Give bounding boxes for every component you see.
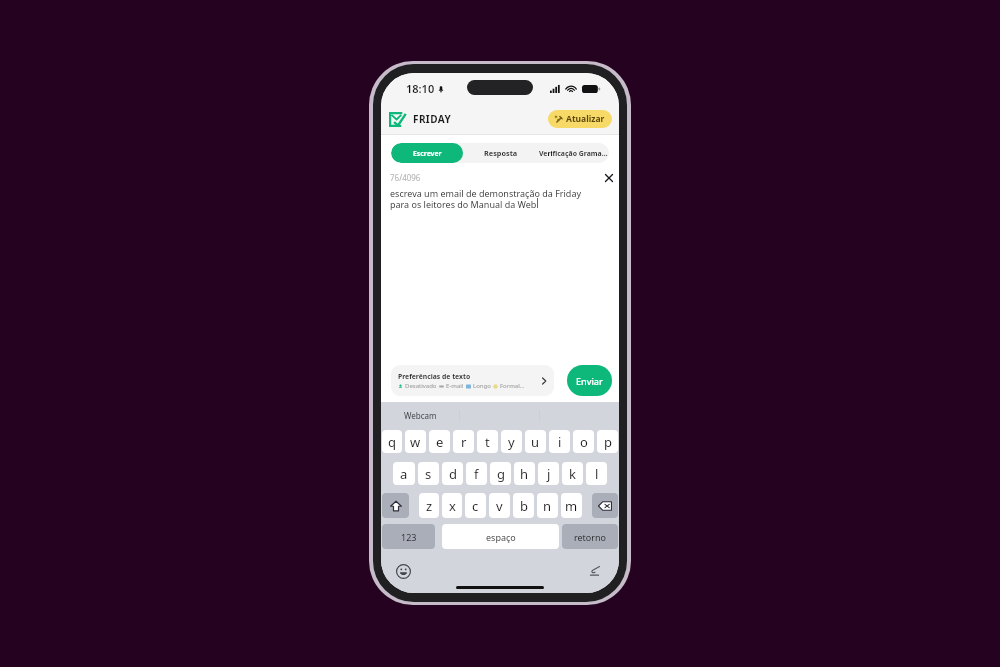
button[interactable]: Emoji [395,563,411,579]
staticText: FRIDAY [413,112,452,126]
staticText: w [410,433,421,451]
button[interactable]: Enviar [567,365,612,396]
staticText: Atualizar [566,113,605,125]
button[interactable]: m [561,493,582,518]
button[interactable]: x [442,493,462,518]
button[interactable]: n [537,493,558,518]
staticText: v [496,497,503,515]
button[interactable]: r [453,430,474,453]
staticText: espaço [486,531,516,543]
button[interactable]: Apagar [592,493,618,518]
button[interactable]: f [466,462,487,485]
button[interactable]: g [490,462,511,485]
staticText: f [474,465,479,483]
staticText: o [580,433,588,451]
button[interactable]: Escrever [391,143,463,163]
staticText: b [520,497,528,515]
staticText: d [449,465,457,483]
staticText: escreva um email de demonstração da Frid… [390,187,593,210]
button[interactable]: Verificação Grama… [538,143,609,163]
button[interactable]: z [419,493,439,518]
button[interactable]: p [597,430,618,453]
button[interactable]: l [586,462,607,485]
staticText: c [472,497,479,515]
staticText: h [520,465,529,483]
button[interactable]: v [489,493,510,518]
button[interactable]: Ocultar teclado [589,565,601,577]
button[interactable]: k [562,462,583,485]
staticText: Verificação Grama… [539,149,608,158]
staticText: g [497,465,505,483]
button[interactable]: d [442,462,463,485]
staticText: i [558,433,562,451]
staticText: t [485,433,490,451]
staticText: x [449,497,456,515]
staticText: Enviar [576,375,603,387]
button[interactable]: Shift [382,493,409,518]
staticText: 18:10 [406,81,435,96]
button[interactable]: u [525,430,546,453]
staticText: p [604,433,612,451]
staticText: Resposta [484,148,518,158]
button[interactable]: c [465,493,486,518]
staticText: retorno [574,531,607,543]
staticText: l [595,465,599,483]
staticText: E-mail [446,382,464,390]
staticText: 123 [401,531,417,543]
button[interactable]: retorno [562,524,618,549]
button[interactable]: i [549,430,570,453]
button[interactable]: t [477,430,498,453]
button[interactable]: o [573,430,594,453]
staticText: z [426,497,433,515]
button[interactable]: 123 [382,524,435,549]
button[interactable]: j [538,462,559,485]
button[interactable]: espaço [442,524,559,549]
button[interactable]: e [429,430,450,453]
staticText: Longo [473,382,491,390]
staticText: m [565,497,578,515]
staticText: k [569,465,576,483]
staticText: Escrever [413,149,442,158]
staticText: e [436,433,444,451]
button[interactable]: s [418,462,439,485]
button[interactable]: b [513,493,534,518]
staticText: Preferências de texto [398,372,471,381]
button[interactable]: Webcam [381,402,459,429]
staticText: u [531,433,540,451]
staticText: j [547,465,551,483]
button[interactable]: h [514,462,535,485]
button[interactable]: Preferências de texto [391,365,554,396]
button[interactable]: Resposta [463,143,538,163]
staticText: Desativado [405,382,437,390]
staticText: s [425,465,432,483]
staticText: Formal… [500,382,525,390]
staticText: q [388,433,396,451]
button[interactable]: y [501,430,522,453]
staticText: Webcam [404,410,437,421]
staticText: r [461,433,467,451]
button[interactable]: w [405,430,426,453]
button[interactable]: Fechar [601,170,616,185]
staticText: y [508,433,515,451]
button[interactable]: Atualizar [548,110,612,128]
staticText: n [543,497,552,515]
staticText: a [400,465,408,483]
staticText: 76/4096 [390,172,421,183]
button[interactable]: q [382,430,402,453]
button[interactable]: a [393,462,415,485]
